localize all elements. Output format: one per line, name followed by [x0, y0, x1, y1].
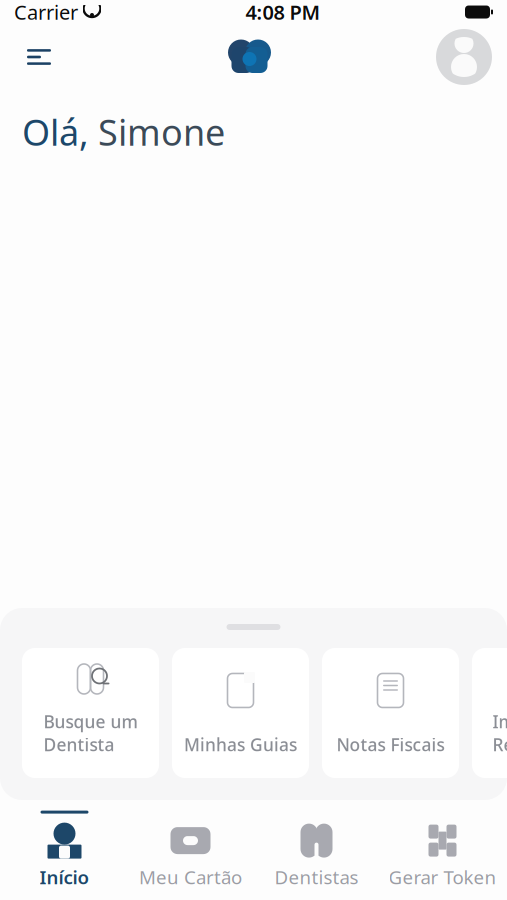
button[interactable]: Notas Fiscais — [322, 648, 459, 778]
button[interactable]: Imposto de Renda — [472, 648, 507, 778]
staticText: Dentistas — [274, 865, 358, 889]
staticText: 4:08 PM — [245, 0, 320, 25]
staticText: Meu Cartão — [139, 865, 242, 889]
button[interactable]: Perfil — [433, 26, 495, 88]
button[interactable]: Menu — [12, 30, 66, 84]
button[interactable]: Meu Cartão — [127, 802, 253, 898]
staticText: Olá, — [22, 108, 89, 156]
staticText: Simone — [89, 108, 225, 156]
button[interactable]: Início — [1, 802, 127, 898]
staticText: Busque um Dentista — [43, 710, 137, 756]
staticText: Carrier — [14, 0, 78, 25]
button[interactable]: Gerar Token — [379, 802, 505, 898]
button[interactable]: Busque um Dentista — [22, 648, 159, 778]
button[interactable]: Minhas Guias — [172, 648, 309, 778]
staticText: Notas Fiscais — [336, 733, 444, 756]
staticText: Minhas Guias — [184, 733, 297, 756]
staticText: Início — [39, 865, 89, 889]
staticText: Gerar Token — [388, 865, 496, 889]
staticText: Imposto de Renda — [492, 710, 507, 756]
button[interactable]: Dentistas — [253, 802, 379, 898]
